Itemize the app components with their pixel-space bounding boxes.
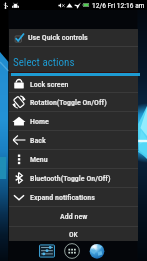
button[interactable]: Home: [9, 112, 138, 130]
staticText: Bluetooth(Toggle On/Off): [30, 174, 111, 183]
staticText: Lock screen: [30, 80, 69, 89]
button[interactable]: Rotation(Toggle On/Off): [9, 93, 138, 111]
staticText: 12/6 Fri 12:16 am: [92, 1, 145, 10]
button[interactable]: OK: [9, 227, 138, 241]
button[interactable]: Browser: [84, 240, 109, 261]
button[interactable]: Menu: [9, 150, 138, 168]
staticText: Use Quick controls: [28, 33, 88, 42]
button[interactable]: Back: [9, 131, 138, 149]
staticText: Expand notifications: [30, 193, 95, 202]
staticText: Back: [30, 136, 46, 145]
button[interactable]: Use Quick controls: [9, 29, 138, 46]
button[interactable]: All apps: [59, 240, 84, 261]
staticText: OK: [69, 230, 78, 239]
button[interactable]: Lock screen: [9, 76, 138, 92]
staticText: Menu: [30, 155, 48, 164]
button[interactable]: Add new: [9, 207, 138, 226]
staticText: Home: [30, 117, 49, 126]
button[interactable]: Bluetooth(Toggle On/Off): [9, 169, 138, 187]
staticText: Select actions: [13, 56, 75, 69]
staticText: Add new: [60, 212, 88, 221]
button[interactable]: Settings: [34, 240, 59, 261]
staticText: Rotation(Toggle On/Off): [30, 98, 107, 107]
button[interactable]: Expand notifications: [9, 188, 138, 206]
